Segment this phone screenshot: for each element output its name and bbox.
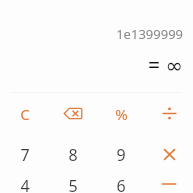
button[interactable]: Divide: [145, 93, 193, 134]
button[interactable]: 8: [49, 134, 97, 175]
button[interactable]: 4: [0, 175, 49, 193]
button[interactable]: Subtract: [145, 175, 193, 193]
staticText: 8: [68, 144, 78, 166]
button[interactable]: 9: [97, 134, 145, 175]
button[interactable]: %: [97, 93, 145, 134]
staticText: 9: [116, 144, 126, 166]
button[interactable]: 6: [97, 175, 145, 193]
staticText: 1e1399999: [116, 25, 183, 43]
staticText: 7: [20, 144, 30, 166]
staticText: %: [115, 104, 128, 124]
staticText: 4: [20, 175, 30, 193]
button[interactable]: C: [0, 93, 49, 134]
staticText: 5: [68, 175, 78, 193]
button[interactable]: 7: [0, 134, 49, 175]
staticText: 6: [116, 175, 126, 193]
button[interactable]: Multiply: [145, 134, 193, 175]
staticText: = ∞: [148, 51, 183, 80]
button[interactable]: 5: [49, 175, 97, 193]
staticText: C: [20, 104, 30, 124]
button[interactable]: Backspace: [49, 93, 97, 134]
